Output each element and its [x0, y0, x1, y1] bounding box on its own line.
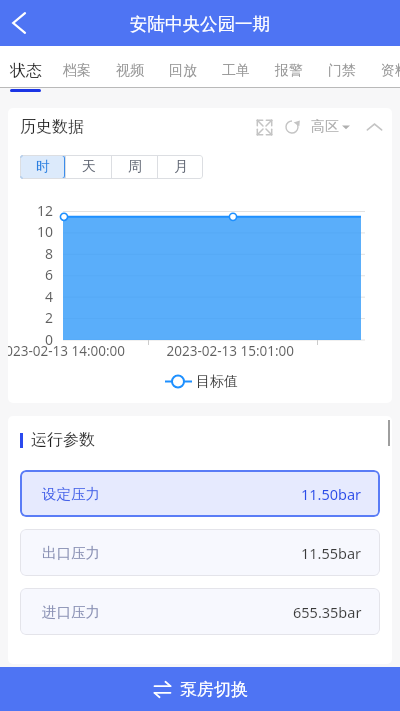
button[interactable]: 进口压力	[20, 588, 380, 635]
button[interactable]: Fullscreen	[248, 115, 272, 139]
staticText: 655.35bar	[293, 602, 362, 622]
staticText: 时	[36, 158, 50, 176]
staticText: 历史数据	[20, 117, 84, 137]
staticText: 设定压力	[42, 485, 100, 503]
staticText: 工单	[222, 62, 250, 80]
staticText: 月	[174, 158, 188, 176]
button[interactable]: Collapse	[362, 115, 386, 139]
staticText: 安陆中央公园一期	[130, 13, 270, 35]
button[interactable]: 资料	[381, 53, 400, 88]
button[interactable]: 视频	[116, 53, 144, 88]
staticText: 天	[82, 158, 96, 176]
staticText: 档案	[63, 62, 91, 80]
staticText: 泵房切换	[180, 679, 248, 700]
button[interactable]: 状态	[10, 53, 42, 88]
staticText: 进口压力	[42, 603, 100, 621]
staticText: 周	[128, 158, 142, 176]
button[interactable]: Back	[0, 4, 38, 42]
staticText: 视频	[116, 62, 144, 80]
staticText: 出口压力	[42, 544, 100, 562]
staticText: 门禁	[328, 62, 356, 80]
staticText: 11.50bar	[301, 484, 362, 504]
button[interactable]: Refresh	[280, 115, 304, 139]
staticText: 报警	[275, 62, 303, 80]
button[interactable]: 出口压力	[20, 529, 380, 576]
button[interactable]: 月	[158, 155, 203, 179]
staticText: 回放	[169, 62, 197, 80]
button[interactable]: 高区	[311, 112, 350, 142]
staticText: 资料	[381, 62, 400, 80]
button[interactable]: 档案	[63, 53, 91, 88]
button[interactable]: 时	[20, 155, 65, 179]
button[interactable]: 泵房切换	[0, 667, 400, 711]
button[interactable]: 报警	[275, 53, 303, 88]
staticText: 状态	[10, 61, 42, 81]
button[interactable]: 工单	[222, 53, 250, 88]
button[interactable]: 门禁	[328, 53, 356, 88]
button[interactable]: 周	[112, 155, 157, 179]
button[interactable]: 天	[66, 155, 111, 179]
button[interactable]: 回放	[169, 53, 197, 88]
button[interactable]: 设定压力	[20, 470, 380, 517]
staticText: 11.55bar	[301, 543, 362, 563]
staticText: 运行参数	[31, 430, 95, 450]
staticText: 高区	[311, 118, 339, 136]
